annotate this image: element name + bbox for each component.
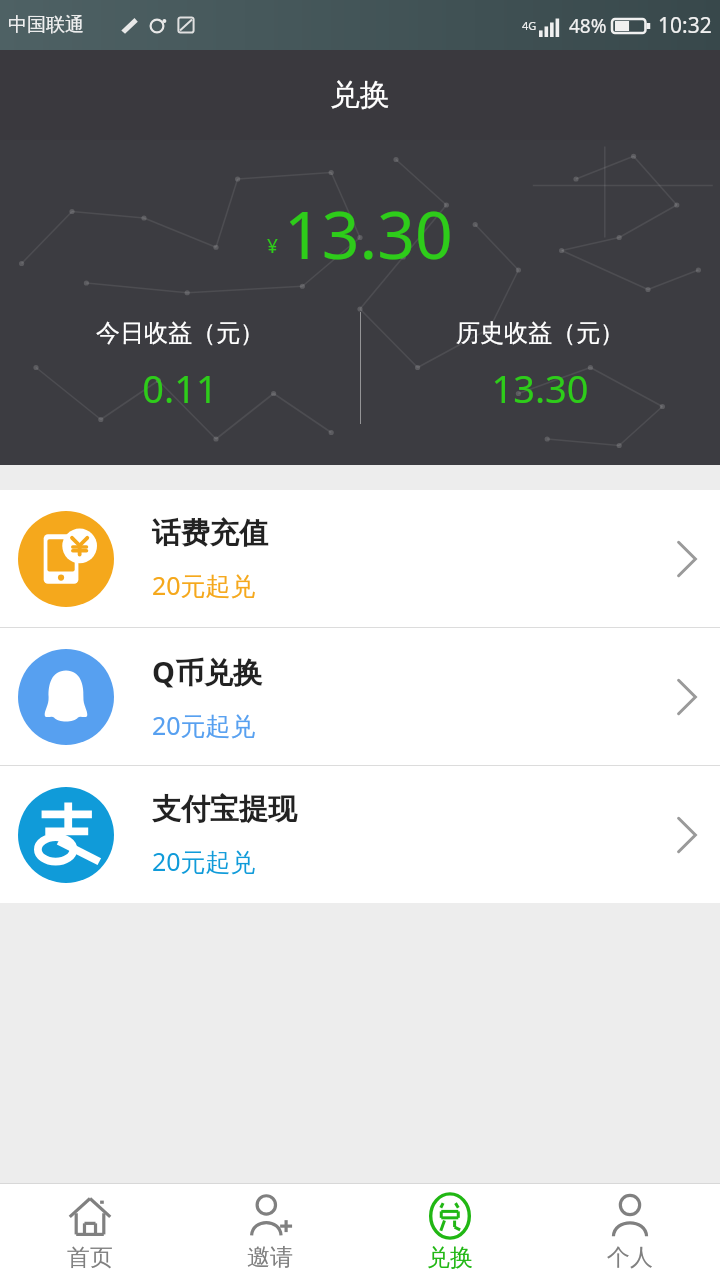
staticText: 48% — [569, 13, 607, 39]
staticText: 4G — [522, 18, 537, 33]
staticText: 中国联通 — [8, 13, 84, 37]
staticText: 13.30 — [491, 362, 589, 414]
button[interactable]: 话费充值 — [0, 490, 720, 627]
button[interactable]: 首页 — [0, 1184, 180, 1280]
button[interactable]: Q币兑换 — [0, 628, 720, 765]
button[interactable]: 兑换 — [360, 1184, 540, 1280]
staticText: 个人 — [607, 1243, 653, 1272]
staticText: 兑换 — [427, 1243, 473, 1272]
staticText: 13.30 — [284, 188, 453, 278]
staticText: 首页 — [67, 1243, 113, 1272]
staticText: ¥ — [267, 233, 278, 259]
staticText: 20元起兑 — [152, 708, 256, 742]
staticText: Q币兑换 — [152, 652, 262, 692]
staticText: 邀请 — [247, 1243, 293, 1272]
other: Open Q币兑换 — [672, 675, 702, 719]
staticText: 支付宝提现 — [152, 791, 297, 828]
staticText: 历史收益（元） — [456, 318, 624, 348]
button[interactable]: 个人 — [540, 1184, 720, 1280]
other: Open 话费充值 — [672, 537, 702, 581]
staticText: 兑换 — [330, 76, 390, 114]
staticText: 0.11 — [142, 362, 218, 414]
staticText: 今日收益（元） — [96, 318, 264, 348]
staticText: 话费充值 — [152, 515, 268, 552]
staticText: 20元起兑 — [152, 844, 256, 878]
staticText: 10:32 — [658, 11, 712, 40]
button[interactable]: 邀请 — [180, 1184, 360, 1280]
button[interactable]: 支付宝提现 — [0, 766, 720, 903]
other: Open 支付宝提现 — [672, 813, 702, 857]
staticText: 20元起兑 — [152, 568, 256, 602]
